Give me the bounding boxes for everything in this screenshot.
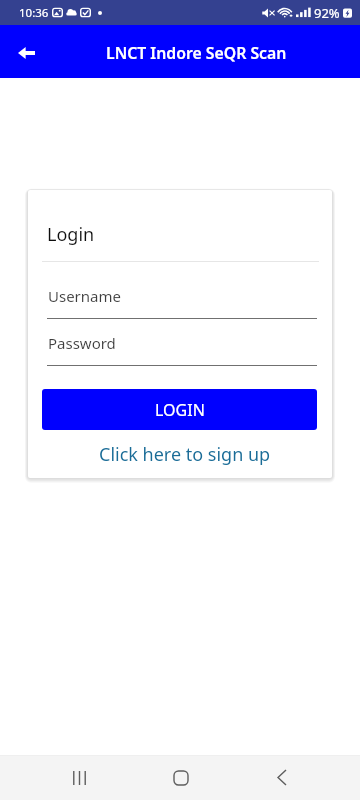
staticText: LNCT Indore SeQR Scan bbox=[106, 42, 287, 64]
button[interactable]: Back bbox=[261, 762, 302, 793]
button[interactable]: LOGIN bbox=[42, 389, 317, 430]
button[interactable]: Home bbox=[160, 762, 201, 793]
button[interactable]: Recent apps bbox=[59, 762, 100, 793]
staticText: Login bbox=[47, 222, 95, 247]
button[interactable]: Username bbox=[47, 282, 317, 319]
staticText: 92% bbox=[314, 4, 340, 22]
staticText: 10:36 bbox=[19, 5, 49, 21]
staticText: LOGIN bbox=[155, 399, 205, 421]
staticText: Username bbox=[48, 286, 121, 306]
button[interactable]: Password bbox=[47, 329, 317, 366]
staticText: Password bbox=[48, 333, 116, 353]
button[interactable]: Click here to sign up bbox=[39, 438, 331, 470]
button[interactable]: Back bbox=[11, 38, 41, 68]
staticText: Click here to sign up bbox=[99, 442, 271, 467]
